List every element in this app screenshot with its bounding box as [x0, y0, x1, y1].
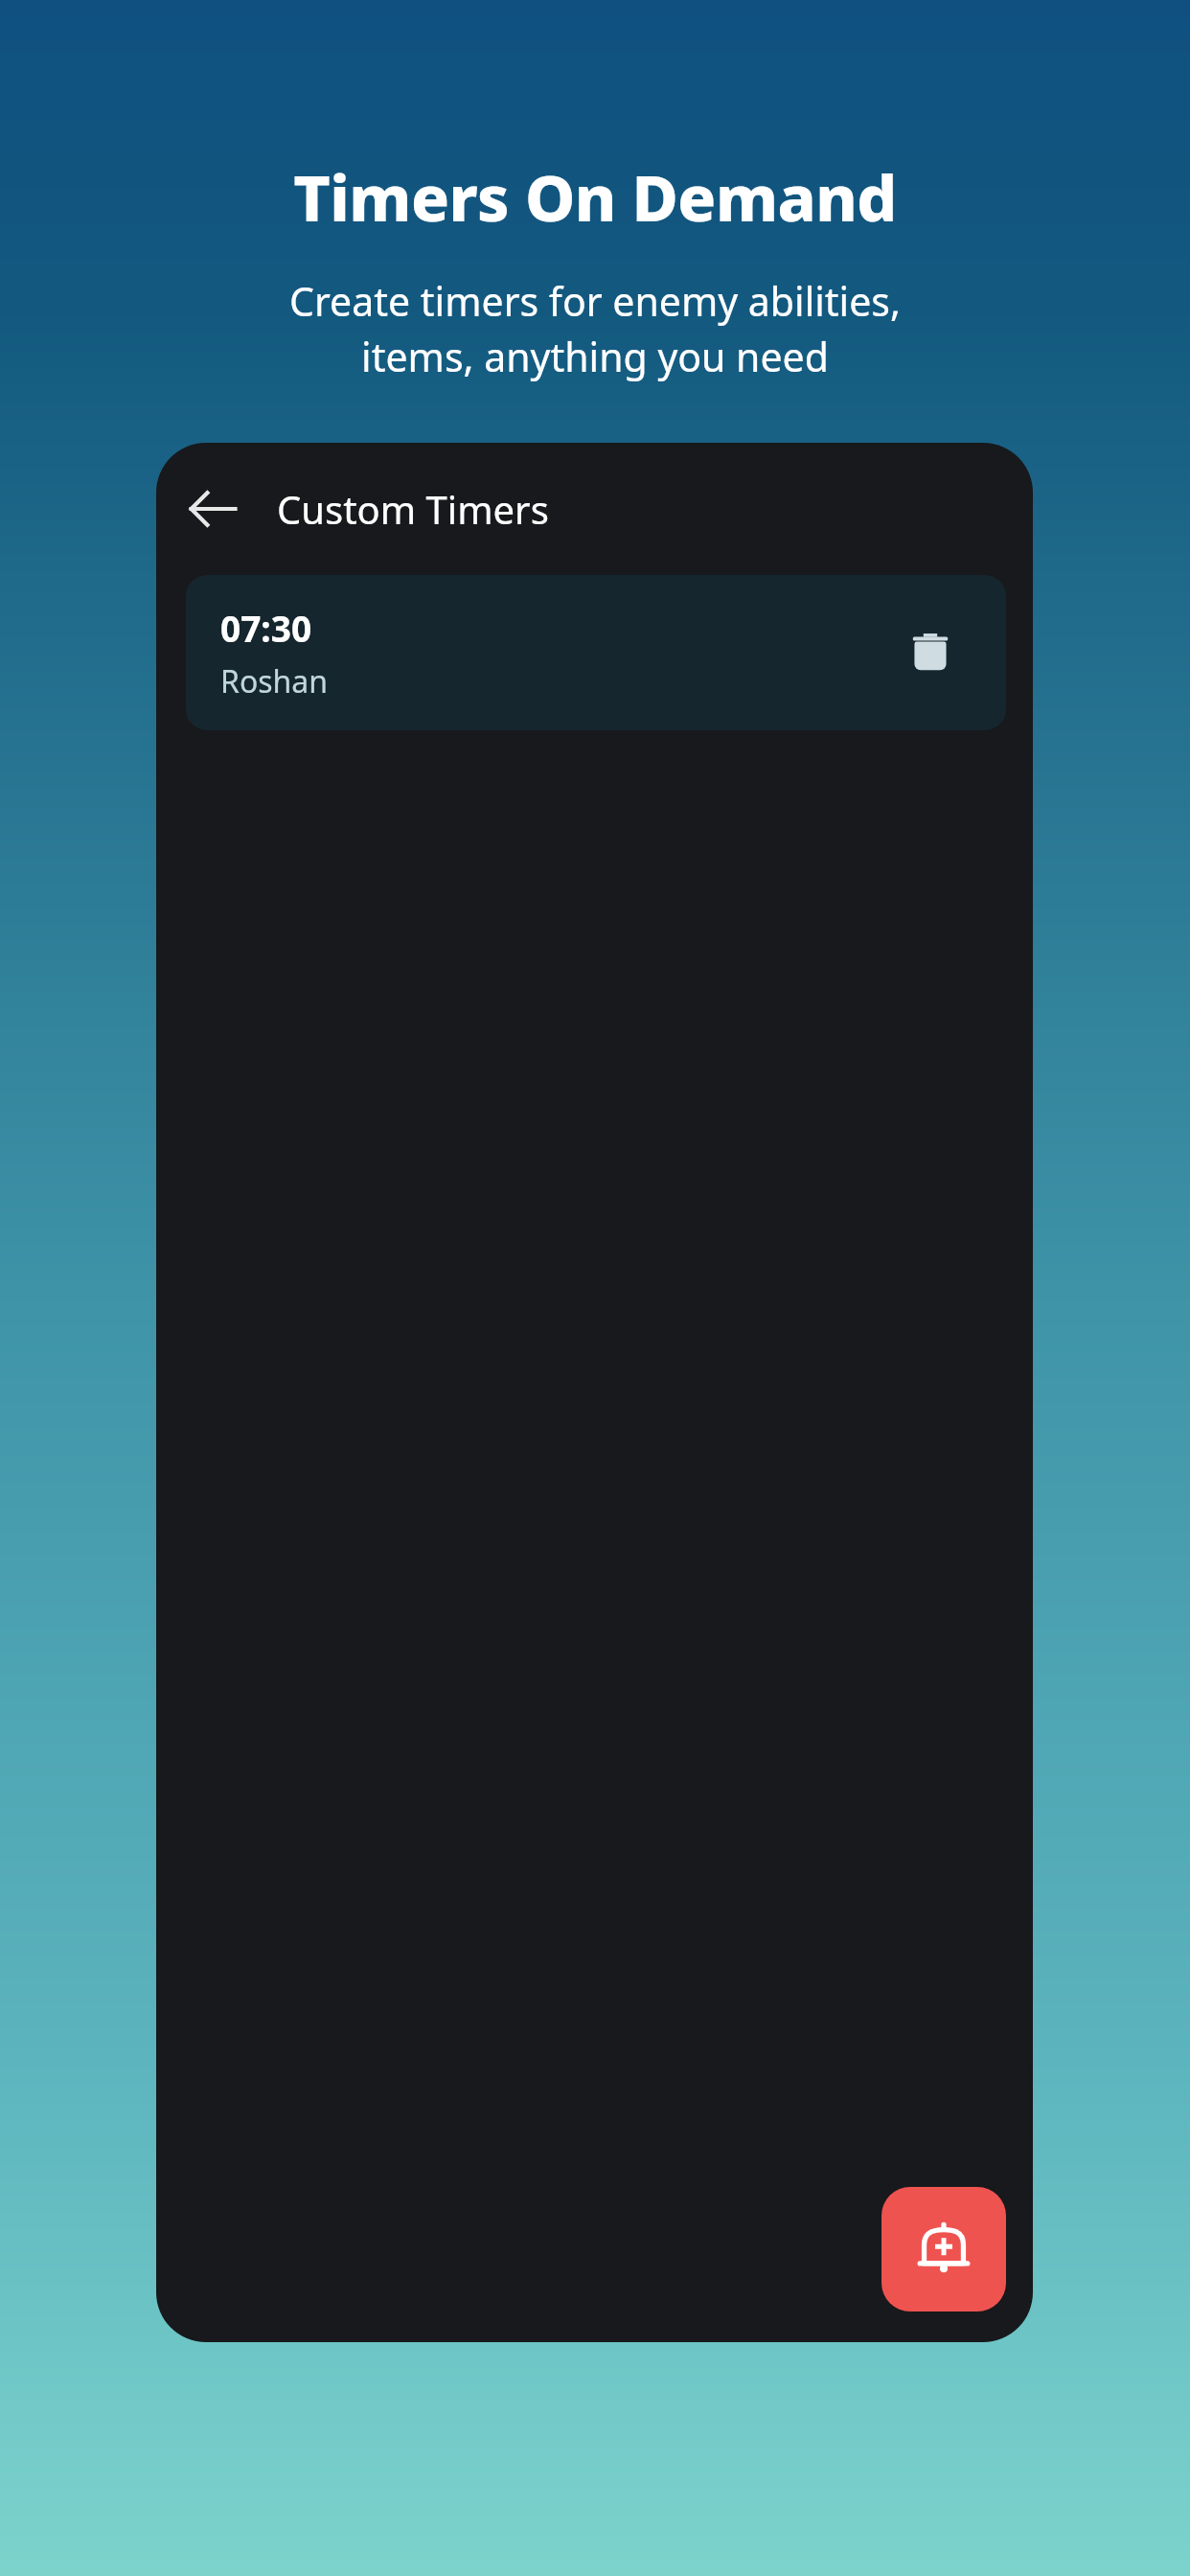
staticText: Create timers for enemy abilities, items… — [289, 274, 901, 383]
staticText: 07:30 — [220, 604, 312, 652]
button[interactable]: Add timer — [881, 2187, 1006, 2311]
staticText: Custom Timers — [277, 483, 549, 535]
button[interactable]: Back — [173, 470, 252, 548]
staticText: Timers On Demand — [293, 153, 897, 240]
button[interactable]: Delete timer — [895, 617, 966, 688]
button[interactable]: 07:30 — [186, 575, 1006, 730]
staticText: Roshan — [220, 660, 329, 702]
